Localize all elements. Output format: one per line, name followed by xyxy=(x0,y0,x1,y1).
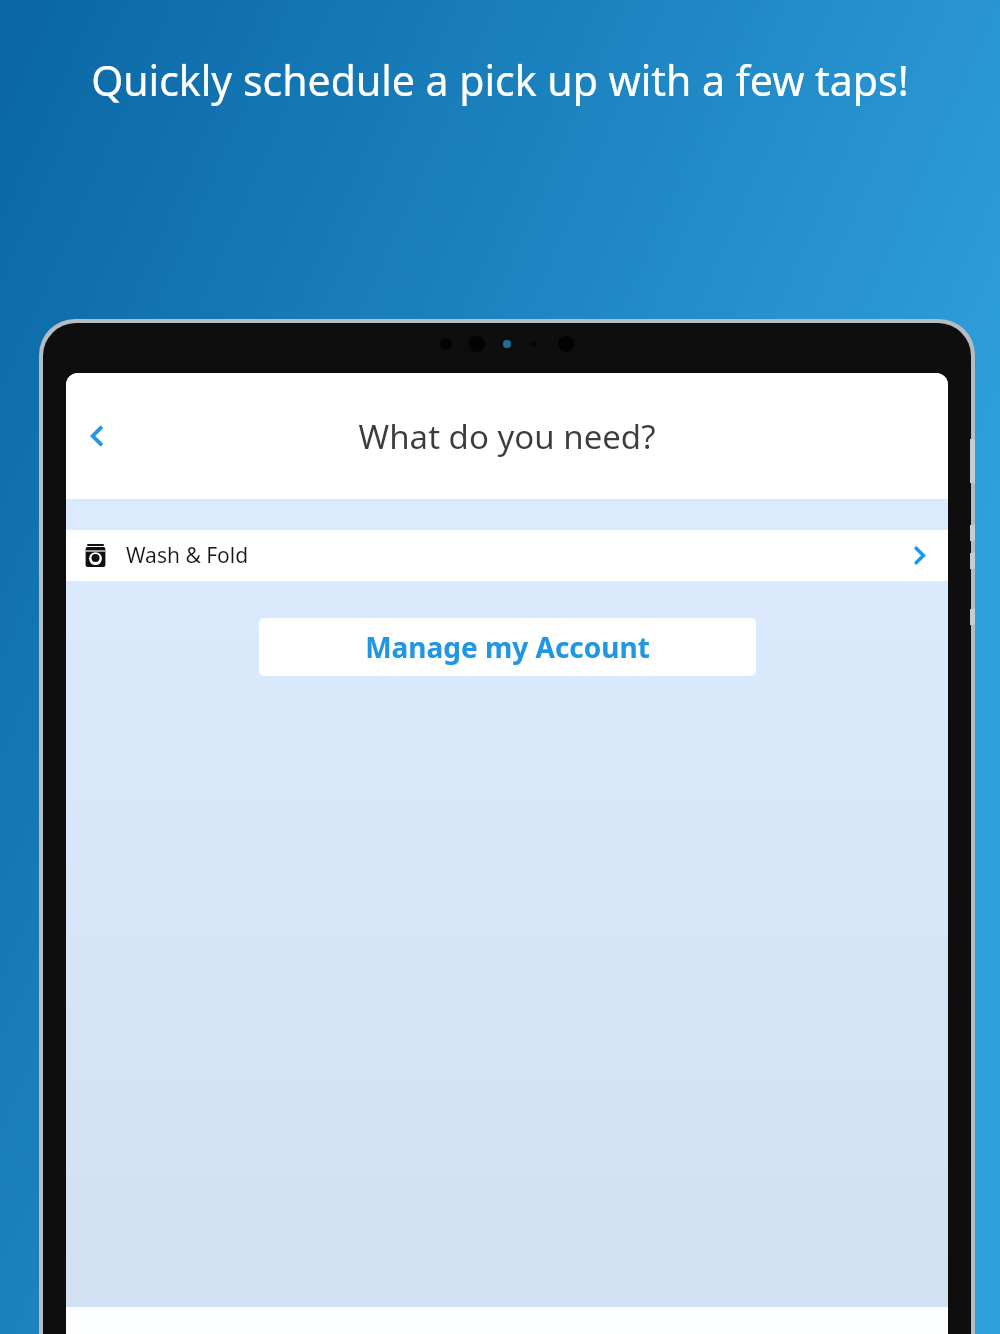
staticText: What do you need? xyxy=(66,414,948,459)
button[interactable]: Manage my Account xyxy=(259,618,756,676)
staticText: Wash & Fold xyxy=(126,541,909,570)
button[interactable]: Wash & Fold xyxy=(66,530,948,581)
staticText: Quickly schedule a pick up with a few ta… xyxy=(76,52,924,108)
staticText: Manage my Account xyxy=(365,628,650,666)
button[interactable]: Back xyxy=(70,409,124,463)
